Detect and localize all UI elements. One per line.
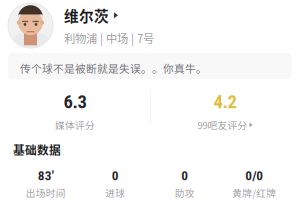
staticText: 0 [181, 168, 188, 184]
staticText: 基础数据 [13, 141, 61, 158]
staticText: 出场时间 [26, 186, 66, 199]
staticText: 4.2 [213, 91, 236, 113]
staticText: 0/0 [245, 168, 263, 184]
staticText: 99吧友评分 [197, 118, 247, 132]
staticText: 媒体评分 [55, 118, 95, 132]
staticText: 83' [38, 168, 54, 184]
staticText: 黄牌/红牌 [232, 186, 276, 199]
staticText: 利物浦 | 中场 | 7号 [64, 30, 154, 46]
staticText: 0 [112, 168, 119, 184]
staticText: 6.3 [63, 91, 86, 113]
button[interactable]: 维尔茨 [8, 3, 300, 48]
staticText: 进球 [105, 186, 125, 199]
button[interactable]: 4.2 [150, 91, 300, 132]
staticText: 助攻 [175, 186, 195, 199]
staticText: 维尔茨 [64, 5, 109, 26]
staticText: 传个球不是被断就是失误。。你真牛。 [20, 60, 207, 76]
